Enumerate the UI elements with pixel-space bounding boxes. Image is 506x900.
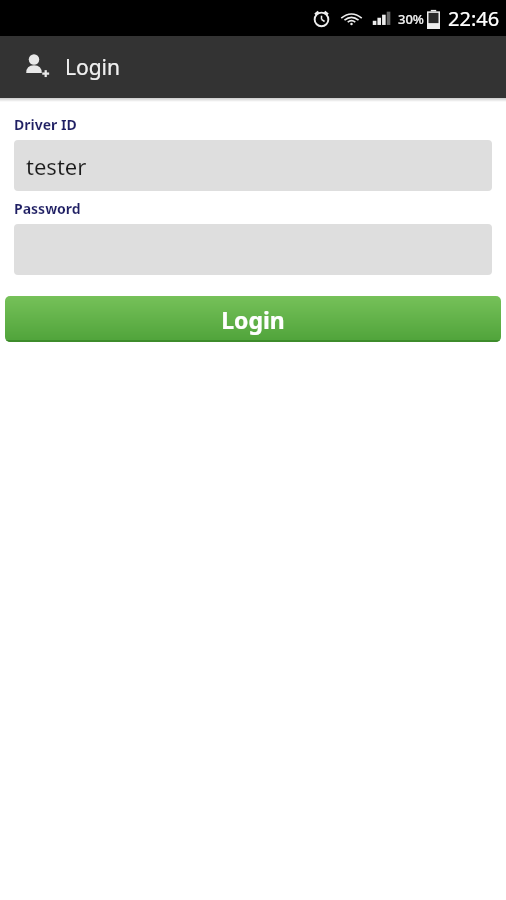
staticText: 30% <box>398 10 424 28</box>
staticText: 22:46 <box>448 5 500 32</box>
staticText: Login <box>65 53 121 82</box>
staticText: Password <box>14 199 81 218</box>
other: Login account <box>22 52 52 82</box>
staticText: tester <box>26 151 87 181</box>
staticText: Driver ID <box>14 115 77 134</box>
button[interactable]: tester <box>14 140 492 191</box>
staticText: Login <box>221 304 285 335</box>
button[interactable]: Login <box>5 296 501 342</box>
